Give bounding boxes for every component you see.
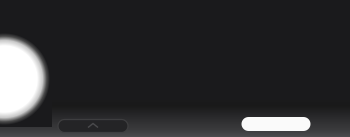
button[interactable]: Continue bbox=[241, 117, 310, 131]
button[interactable]: Share bbox=[58, 119, 128, 132]
